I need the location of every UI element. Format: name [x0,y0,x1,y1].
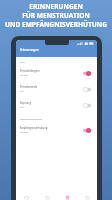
staticText: Eisprung [20,101,31,105]
staticText: Periodenbeginn [20,69,40,73]
button[interactable]: Mehr [77,192,97,200]
button[interactable]: Empfängnisverhütung [16,122,97,138]
staticText: Empfängnisverhütung [20,126,48,130]
staticText: um 7:00 [20,74,28,77]
staticText: UND EMPFÄNGNISVERHÜTUNG [5,20,107,29]
staticText: FÜR MENSTRUATION [22,11,90,20]
button[interactable]: Off [83,103,91,108]
button[interactable]: Periodenende [16,81,97,97]
staticText: um 9:00 [20,131,28,134]
button[interactable]: Erinnerungen [57,192,77,200]
button[interactable]: Kalender [37,192,57,200]
staticText: Aus [20,90,24,93]
staticText: Erinnerungen [20,48,39,52]
staticText: ERINNERUNGEN [29,2,83,11]
button[interactable]: Off [83,87,91,92]
staticText: Aus [20,106,24,109]
button[interactable]: Heute [16,192,37,200]
button[interactable]: Eisprung [16,97,97,113]
staticText: Empfängnisverhütung [20,118,43,121]
staticText: Aktiv [20,61,25,64]
button[interactable]: On [83,128,91,133]
button[interactable]: On [83,71,91,76]
button[interactable]: Periodenbeginn [16,65,97,81]
staticText: Periodenende [20,85,38,89]
